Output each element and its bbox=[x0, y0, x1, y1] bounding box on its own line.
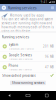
staticText: You can see which apps and system servic… bbox=[1, 17, 53, 33]
staticText: Show running services bbox=[12, 81, 44, 85]
button[interactable]: Show cached processes bbox=[0, 72, 56, 79]
button[interactable]: Phone bbox=[0, 62, 56, 72]
button[interactable]: System bbox=[0, 41, 56, 52]
staticText: Show cached processes bbox=[2, 74, 35, 78]
button[interactable]: Google Services bbox=[0, 52, 56, 62]
staticText: 201 MB bbox=[43, 45, 54, 48]
button[interactable]: App icon bbox=[2, 5, 6, 10]
button[interactable]: Recent apps bbox=[45, 94, 48, 97]
staticText: Memory used by apps bbox=[10, 13, 44, 17]
staticText: Running services bbox=[2, 35, 30, 39]
button[interactable]: More options bbox=[51, 6, 54, 9]
staticText: 47 MB bbox=[45, 65, 54, 69]
staticText: 96 MB bbox=[45, 55, 54, 59]
staticText: 2 processes and 1 service bbox=[9, 47, 34, 50]
staticText: System bbox=[9, 43, 19, 47]
button[interactable]: Back bbox=[8, 94, 11, 97]
button[interactable]: Home bbox=[26, 94, 30, 97]
staticText: Google Services bbox=[9, 53, 32, 57]
staticText: Phone bbox=[9, 63, 19, 67]
button[interactable]: Show running services bbox=[10, 81, 46, 85]
staticText: 1 process and 1 service bbox=[9, 68, 32, 71]
staticText: 9:41 bbox=[41, 0, 48, 4]
staticText: 1 process and 3 services bbox=[9, 57, 33, 60]
staticText: Running services bbox=[8, 5, 37, 10]
